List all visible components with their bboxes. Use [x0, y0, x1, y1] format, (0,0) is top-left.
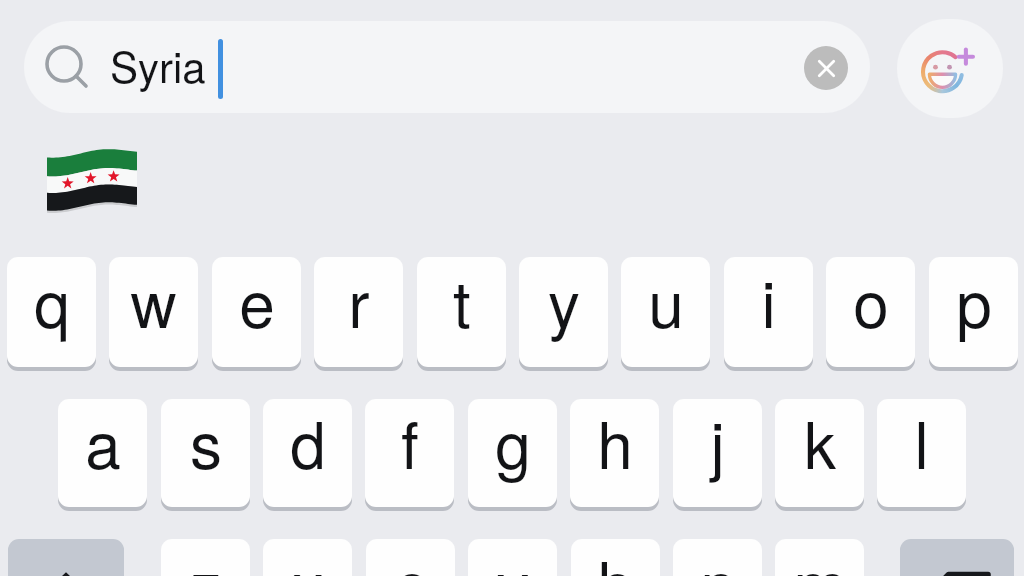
button[interactable]: t [417, 257, 506, 367]
staticText: i [761, 257, 776, 347]
staticText: b [598, 539, 634, 576]
staticText: n [700, 539, 736, 576]
staticText: m [793, 539, 847, 576]
staticText: e [239, 257, 275, 347]
staticText: q [34, 257, 70, 347]
button[interactable]: m [775, 539, 864, 576]
staticText: h [597, 399, 633, 488]
staticText: z [190, 539, 222, 576]
staticText: r [348, 257, 370, 347]
staticText: y [548, 257, 580, 347]
staticText: f [401, 399, 419, 488]
button[interactable]: z [161, 539, 250, 576]
staticText: c [395, 539, 427, 576]
staticText: d [290, 399, 326, 488]
button[interactable]: b [571, 539, 660, 576]
button[interactable]: l [877, 399, 966, 507]
staticText: Syria [110, 35, 206, 95]
staticText: p [956, 257, 992, 347]
button[interactable]: g [468, 399, 557, 507]
button[interactable]: q [7, 257, 96, 367]
button[interactable]: u [621, 257, 710, 367]
staticText: a [85, 399, 121, 488]
staticText: v [497, 539, 529, 576]
button[interactable]: Clear search [804, 46, 848, 90]
staticText: l [914, 399, 929, 488]
staticText: u [648, 257, 684, 347]
button[interactable]: h [570, 399, 659, 507]
button[interactable]: Create sticker [897, 19, 1003, 118]
button[interactable]: r [314, 257, 403, 367]
button[interactable]: Shift [8, 539, 124, 576]
button[interactable]: s [161, 399, 250, 507]
staticText: s [190, 399, 222, 488]
button[interactable]: c [366, 539, 455, 576]
staticText: j [710, 399, 725, 488]
button[interactable]: v [468, 539, 557, 576]
button[interactable]: Backspace [900, 539, 1014, 576]
button[interactable]: f [365, 399, 454, 507]
button[interactable]: a [58, 399, 147, 507]
button[interactable]: j [673, 399, 762, 507]
staticText: k [804, 399, 836, 488]
button[interactable]: x [263, 539, 352, 576]
button[interactable]: w [109, 257, 198, 367]
button[interactable]: e [212, 257, 301, 367]
button[interactable]: o [826, 257, 915, 367]
button[interactable]: n [673, 539, 762, 576]
staticText: o [853, 257, 889, 347]
staticText: x [292, 539, 324, 576]
button[interactable]: k [775, 399, 864, 507]
button[interactable]: Search [24, 21, 870, 113]
button[interactable]: y [519, 257, 608, 367]
staticText: t [453, 257, 471, 347]
staticText: w [130, 257, 177, 347]
button[interactable]: i [724, 257, 813, 367]
button[interactable]: d [263, 399, 352, 507]
button[interactable]: p [929, 257, 1018, 367]
staticText: g [495, 399, 531, 488]
